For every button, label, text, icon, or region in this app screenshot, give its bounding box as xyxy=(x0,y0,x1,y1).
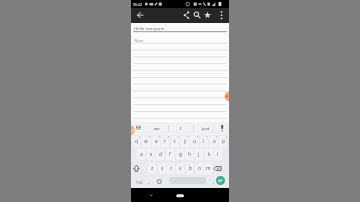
button[interactable]: q xyxy=(132,136,140,147)
button[interactable]: I xyxy=(169,122,193,135)
staticText: g xyxy=(179,151,182,158)
staticText: k xyxy=(208,151,211,158)
staticText: Note xyxy=(134,38,144,44)
button[interactable]: r xyxy=(161,136,169,147)
staticText: 06:42 xyxy=(133,2,142,7)
staticText: l xyxy=(217,151,219,158)
button[interactable]: h xyxy=(185,149,193,160)
button[interactable]: n xyxy=(195,163,203,174)
staticText: I xyxy=(180,126,182,132)
staticText: v xyxy=(179,165,182,172)
staticText: w xyxy=(144,138,148,145)
button[interactable]: b xyxy=(186,163,194,174)
button[interactable] xyxy=(131,188,229,202)
staticText: just xyxy=(202,126,210,132)
staticText: b xyxy=(189,165,192,172)
staticText: . xyxy=(213,179,215,186)
button[interactable] xyxy=(203,8,212,21)
button[interactable]: y xyxy=(181,136,189,147)
button[interactable]: . xyxy=(210,177,218,188)
staticText: x xyxy=(161,165,164,172)
staticText: we xyxy=(154,126,160,132)
staticText: n xyxy=(198,165,201,172)
button[interactable]: i xyxy=(200,136,208,147)
staticText: ?123 xyxy=(136,181,143,185)
staticText: f xyxy=(169,151,171,158)
staticText: q xyxy=(135,138,138,145)
button[interactable]: ?123 xyxy=(132,177,147,188)
button[interactable]: o xyxy=(210,136,218,147)
staticText: e xyxy=(155,138,158,145)
button[interactable] xyxy=(183,8,192,21)
button[interactable]: just xyxy=(194,122,218,135)
staticText: y xyxy=(184,138,187,145)
staticText: , xyxy=(148,179,150,186)
staticText: Hello everyone xyxy=(134,25,165,31)
button[interactable]: we xyxy=(146,122,168,135)
button[interactable]: p xyxy=(219,136,227,147)
button[interactable] xyxy=(132,163,147,174)
button[interactable] xyxy=(133,8,146,21)
button[interactable]: m xyxy=(204,163,212,174)
button[interactable]: , xyxy=(145,177,153,188)
button[interactable]: v xyxy=(176,163,184,174)
staticText: o xyxy=(213,138,216,145)
staticText: u xyxy=(193,138,196,145)
button[interactable]: l xyxy=(214,149,222,160)
button[interactable]: w xyxy=(142,136,150,147)
button[interactable]: k xyxy=(205,149,213,160)
button[interactable]: e xyxy=(152,136,160,147)
staticText: j xyxy=(198,151,200,158)
staticText: i xyxy=(203,138,205,145)
button[interactable]: g xyxy=(176,149,184,160)
staticText: h xyxy=(188,151,191,158)
staticText: s xyxy=(150,151,153,158)
staticText: c xyxy=(170,165,173,172)
staticText: a xyxy=(140,151,143,158)
button[interactable]: j xyxy=(195,149,203,160)
staticText: r xyxy=(164,138,166,145)
staticText: z xyxy=(151,165,154,172)
button[interactable]: z xyxy=(148,163,156,174)
button[interactable]: d xyxy=(156,149,164,160)
button[interactable] xyxy=(217,8,226,21)
button[interactable]: s xyxy=(147,149,155,160)
button[interactable]: t xyxy=(171,136,179,147)
button[interactable]: f xyxy=(166,149,174,160)
button[interactable]: x xyxy=(158,163,166,174)
staticText: d xyxy=(159,151,162,158)
staticText: p xyxy=(222,138,225,145)
staticText: t xyxy=(174,138,176,145)
button[interactable] xyxy=(216,176,225,185)
button[interactable] xyxy=(193,8,202,21)
button[interactable] xyxy=(214,163,229,174)
button[interactable]: u xyxy=(190,136,198,147)
button[interactable]: c xyxy=(167,163,175,174)
staticText: m xyxy=(206,165,211,172)
button[interactable]: a xyxy=(137,149,145,160)
